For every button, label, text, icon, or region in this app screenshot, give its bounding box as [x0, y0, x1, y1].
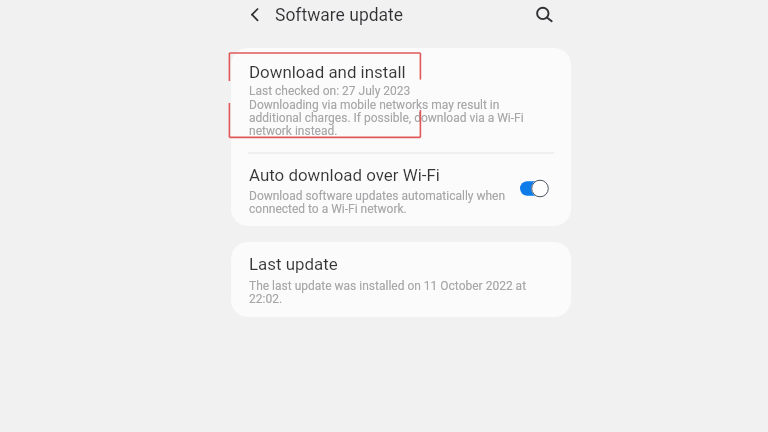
staticText: Software update	[275, 5, 404, 26]
staticText: Download software updates automatically …	[249, 189, 509, 216]
staticText: Last checked on: 27 July 2023	[249, 84, 411, 98]
staticText: The last update was installed on 11 Octo…	[249, 279, 553, 306]
staticText: Auto download over Wi-Fi	[249, 165, 440, 185]
button[interactable]: Auto download over Wi-Fi, on	[520, 179, 550, 198]
staticText: Download and install	[249, 62, 406, 82]
button[interactable]: Navigate up	[235, 0, 267, 32]
button[interactable]: Last update	[231, 242, 571, 317]
staticText: Last update	[249, 254, 338, 274]
button[interactable]: Download and install	[231, 48, 571, 152]
button[interactable]: Search	[526, 0, 558, 32]
button[interactable]: Auto download over Wi-Fi	[231, 154, 571, 226]
staticText: Downloading via mobile networks may resu…	[249, 98, 553, 138]
